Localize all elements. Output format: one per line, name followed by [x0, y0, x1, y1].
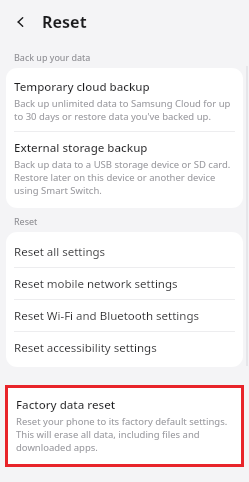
staticText: Reset all settings: [14, 244, 106, 260]
button[interactable]: Factory data reset: [8, 388, 241, 464]
staticText: Back up unlimited data to Samsung Cloud …: [14, 97, 235, 123]
button[interactable]: Temporary cloud backup: [6, 71, 243, 131]
staticText: Reset mobile network settings: [14, 276, 178, 292]
staticText: Reset accessibility settings: [14, 340, 157, 356]
staticText: Reset Wi-Fi and Bluetooth settings: [14, 308, 199, 324]
button[interactable]: External storage backup: [6, 132, 243, 205]
staticText: Back up your data: [14, 51, 91, 63]
staticText: Back up data to a USB storage device or …: [14, 158, 235, 197]
button[interactable]: Reset accessibility settings: [6, 332, 243, 363]
button[interactable]: Reset mobile network settings: [6, 268, 243, 299]
button[interactable]: Back: [10, 11, 32, 33]
staticText: External storage backup: [14, 140, 148, 156]
staticText: Temporary cloud backup: [14, 79, 150, 95]
staticText: Reset: [14, 215, 38, 227]
button[interactable]: Reset Wi-Fi and Bluetooth settings: [6, 300, 243, 331]
staticText: Reset: [42, 11, 87, 33]
staticText: Factory data reset: [16, 397, 116, 413]
button[interactable]: Reset all settings: [6, 236, 243, 267]
staticText: Reset your phone to its factory default …: [16, 415, 233, 454]
